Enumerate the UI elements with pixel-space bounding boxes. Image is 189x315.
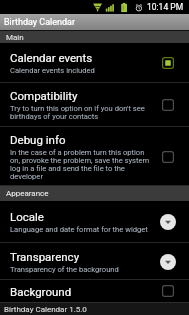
staticText: Calendar events bbox=[10, 51, 93, 64]
button[interactable]: Open list bbox=[160, 254, 176, 270]
staticText: Transparency of the background bbox=[10, 265, 119, 274]
button[interactable]: Open list bbox=[160, 214, 176, 230]
staticText: Compatibility bbox=[10, 89, 78, 102]
button[interactable]: Transparency bbox=[0, 243, 189, 280]
button[interactable]: Locale bbox=[0, 201, 189, 243]
staticText: Background bbox=[10, 285, 72, 298]
staticText: Language and date format for the widget bbox=[10, 225, 148, 234]
staticText: Appearance bbox=[6, 189, 49, 198]
staticText: Birthday Calendar bbox=[4, 17, 76, 28]
staticText: In the case of a problem turn this optio… bbox=[10, 148, 151, 181]
staticText: 10:14 PM bbox=[147, 2, 184, 12]
staticText: Birthday Calendar 1.5.0 bbox=[4, 305, 87, 314]
staticText: Locale bbox=[10, 210, 44, 223]
staticText: Try to turn this option on if you don't … bbox=[10, 104, 151, 121]
staticText: Debug info bbox=[10, 133, 66, 146]
button[interactable]: Compatibility bbox=[0, 83, 189, 127]
button[interactable]: Debug info bbox=[0, 127, 189, 186]
staticText: Calendar events included bbox=[10, 66, 95, 75]
staticText: Transparency bbox=[10, 250, 80, 263]
staticText: Main bbox=[6, 33, 24, 42]
button[interactable]: Background bbox=[0, 280, 189, 302]
button[interactable]: Calendar events bbox=[0, 43, 189, 83]
